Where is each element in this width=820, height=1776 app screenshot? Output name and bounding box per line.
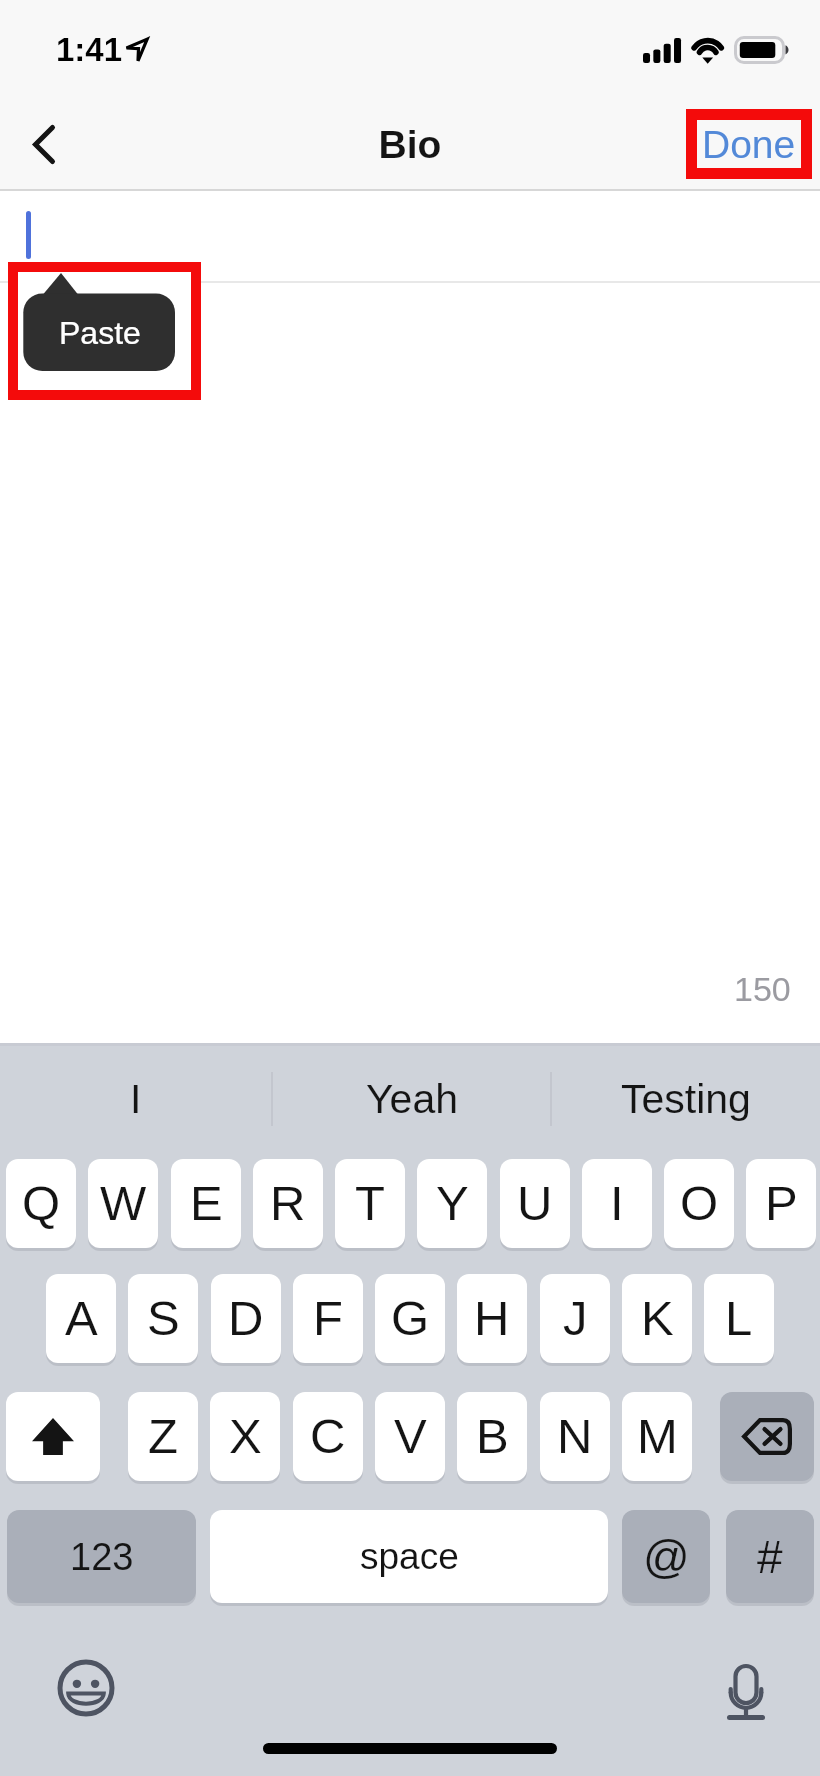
staticText: N: [557, 1409, 593, 1464]
staticText: Bio: [0, 123, 820, 167]
staticText: Yeah: [366, 1076, 458, 1122]
button[interactable]: S: [128, 1274, 198, 1363]
staticText: I: [610, 1176, 624, 1231]
button[interactable]: O: [664, 1159, 734, 1248]
button[interactable]: D: [211, 1274, 281, 1363]
staticText: Y: [436, 1176, 469, 1231]
staticText: G: [391, 1291, 430, 1346]
staticText: O: [680, 1176, 719, 1231]
staticText: M: [637, 1409, 678, 1464]
other: Backspace: [742, 1418, 792, 1455]
staticText: 123: [70, 1536, 134, 1578]
staticText: K: [641, 1291, 674, 1346]
staticText: 1:41: [56, 31, 123, 68]
staticText: Done: [702, 123, 796, 167]
button[interactable]: Y: [417, 1159, 487, 1248]
staticText: #: [757, 1531, 783, 1582]
staticText: W: [100, 1176, 147, 1231]
button[interactable]: L: [704, 1274, 774, 1363]
button[interactable]: M: [622, 1392, 692, 1481]
button[interactable]: W: [88, 1159, 158, 1248]
button[interactable]: I: [582, 1159, 652, 1248]
button[interactable]: J: [540, 1274, 610, 1363]
button[interactable]: Q: [6, 1159, 76, 1248]
staticText: I: [130, 1076, 142, 1122]
staticText: D: [228, 1291, 264, 1346]
staticText: E: [190, 1176, 223, 1231]
staticText: S: [147, 1291, 180, 1346]
button[interactable]: Backspace: [720, 1392, 814, 1481]
button[interactable]: Testing: [552, 1043, 820, 1155]
staticText: space: [360, 1536, 459, 1577]
staticText: Testing: [621, 1076, 751, 1122]
button[interactable]: R: [253, 1159, 323, 1248]
other: Shift: [32, 1418, 74, 1455]
staticText: U: [517, 1176, 553, 1231]
button[interactable]: I: [0, 1043, 271, 1155]
button[interactable]: 123: [7, 1510, 196, 1603]
button[interactable]: Yeah: [273, 1043, 550, 1155]
staticText: Q: [22, 1176, 61, 1231]
button[interactable]: E: [171, 1159, 241, 1248]
button[interactable]: X: [210, 1392, 280, 1481]
staticText: X: [229, 1409, 262, 1464]
button[interactable]: G: [375, 1274, 445, 1363]
button[interactable]: Voice input: [703, 1651, 789, 1737]
button[interactable]: T: [335, 1159, 405, 1248]
staticText: B: [476, 1409, 509, 1464]
button[interactable]: A: [46, 1274, 116, 1363]
button[interactable]: C: [293, 1392, 363, 1481]
staticText: Z: [148, 1409, 178, 1464]
button[interactable]: U: [500, 1159, 570, 1248]
button[interactable]: P: [746, 1159, 816, 1248]
staticText: P: [765, 1176, 798, 1231]
button[interactable]: Done: [697, 120, 801, 168]
button[interactable]: N: [540, 1392, 610, 1481]
staticText: H: [474, 1291, 510, 1346]
button[interactable]: Back: [0, 95, 86, 191]
staticText: J: [563, 1291, 588, 1346]
button[interactable]: Z: [128, 1392, 198, 1481]
button[interactable]: #: [726, 1510, 814, 1603]
button[interactable]: Shift: [6, 1392, 100, 1481]
staticText: @: [643, 1531, 690, 1582]
staticText: F: [313, 1291, 343, 1346]
button[interactable]: B: [457, 1392, 527, 1481]
staticText: L: [725, 1291, 753, 1346]
button[interactable]: Paste: [18, 272, 191, 390]
staticText: Paste: [59, 315, 141, 351]
staticText: T: [355, 1176, 385, 1231]
button[interactable]: H: [457, 1274, 527, 1363]
staticText: 150: [734, 970, 791, 1008]
staticText: C: [310, 1409, 346, 1464]
button[interactable]: @: [622, 1510, 710, 1603]
button[interactable]: Emoji keyboard: [43, 1645, 129, 1731]
staticText: V: [394, 1409, 427, 1464]
button[interactable]: V: [375, 1392, 445, 1481]
staticText: R: [270, 1176, 306, 1231]
button[interactable]: K: [622, 1274, 692, 1363]
button[interactable]: space: [210, 1510, 608, 1603]
staticText: A: [65, 1291, 98, 1346]
button[interactable]: F: [293, 1274, 363, 1363]
